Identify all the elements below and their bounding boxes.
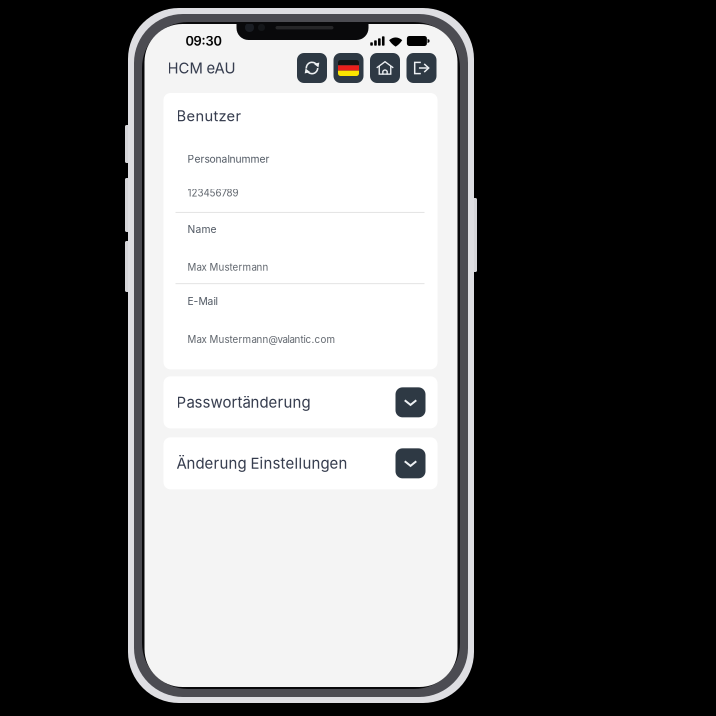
button[interactable]: Startseite [370,53,400,83]
button[interactable]: Änderung Einstellungen [163,437,437,489]
staticText: Name [187,223,216,235]
staticText: Personalnummer [187,153,269,165]
staticText: Passwortänderung [176,393,310,411]
staticText: Max Mustermann [187,261,268,273]
staticText: Änderung Einstellungen [176,454,347,472]
staticText: Benutzer [176,107,241,125]
button[interactable]: Abmelden [406,53,436,83]
staticText: 09:30 [185,33,221,49]
button[interactable]: Aktualisieren [297,53,327,83]
button[interactable]: Passwortänderung [163,376,437,428]
button[interactable]: Sprache wählen [333,53,363,83]
staticText: Max Mustermann@valantic.com [187,334,335,345]
staticText: 123456789 [187,187,238,199]
staticText: HCM eAU [167,59,235,77]
staticText: E-Mail [187,295,217,307]
